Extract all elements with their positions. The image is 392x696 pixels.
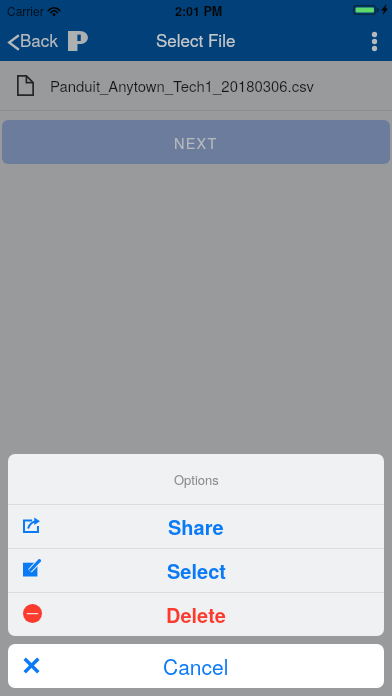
- staticText: Select File: [156, 27, 236, 51]
- staticText: Panduit_Anytown_Tech1_20180306.csv: [50, 75, 315, 96]
- button[interactable]: Share: [8, 505, 384, 548]
- staticText: Cancel: [163, 651, 229, 681]
- button[interactable]: Select: [8, 549, 384, 592]
- button[interactable]: Delete: [8, 593, 384, 636]
- staticText: Back: [20, 27, 58, 51]
- button[interactable]: NEXT: [2, 120, 390, 164]
- staticText: Delete: [166, 600, 226, 629]
- button[interactable]: Cancel: [8, 644, 384, 688]
- staticText: Select: [167, 556, 226, 585]
- staticText: 2:01 PM: [175, 2, 223, 20]
- button[interactable]: Back: [0, 30, 64, 54]
- staticText: Options: [174, 470, 219, 489]
- button[interactable]: Panduit_Anytown_Tech1_20180306.csv: [0, 61, 392, 110]
- staticText: Share: [168, 512, 224, 541]
- staticText: Carrier: [7, 2, 44, 19]
- button[interactable]: More options: [358, 22, 392, 61]
- staticText: NEXT: [174, 132, 218, 153]
